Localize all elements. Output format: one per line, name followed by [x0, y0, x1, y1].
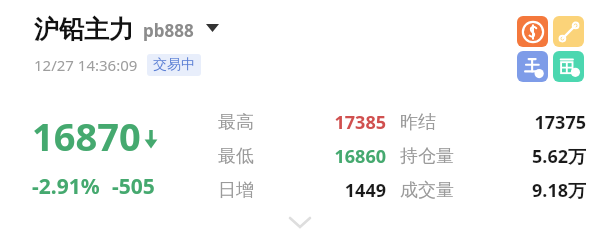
button[interactable]: 最高 — [218, 110, 586, 135]
button[interactable]: 最低 — [218, 144, 586, 169]
staticText: pb888 — [143, 19, 194, 42]
button[interactable]: 日增 — [218, 178, 586, 203]
staticText: 持仓量 — [400, 145, 454, 168]
button[interactable]: Main force — [517, 51, 548, 82]
button[interactable]: Expand — [280, 214, 320, 230]
staticText: 17375 — [534, 110, 586, 135]
button[interactable]: 交易中 — [147, 54, 201, 76]
staticText: 最高 — [218, 111, 254, 134]
button[interactable]: Chart trend — [553, 16, 584, 47]
staticText: 1449 — [344, 178, 386, 203]
staticText: 5.62万 — [532, 144, 586, 169]
staticText: 交易中 — [153, 56, 195, 74]
staticText: 17385 — [334, 110, 386, 135]
staticText: 沪铅主力 — [34, 14, 134, 45]
staticText: 昨结 — [400, 111, 436, 134]
staticText: 9.18万 — [532, 178, 586, 203]
button[interactable]: Funds — [517, 16, 548, 47]
staticText: 日增 — [218, 179, 254, 202]
staticText: 成交量 — [400, 179, 454, 202]
staticText: 最低 — [218, 145, 254, 168]
staticText: -505 — [112, 172, 155, 201]
staticText: 12/27 14:36:09 — [34, 55, 138, 75]
button[interactable]: Select contract — [202, 18, 222, 38]
staticText: 16870 — [32, 110, 141, 162]
button[interactable]: Data board — [553, 51, 584, 82]
staticText: 16860 — [334, 144, 386, 169]
staticText: -2.91% — [32, 172, 100, 201]
